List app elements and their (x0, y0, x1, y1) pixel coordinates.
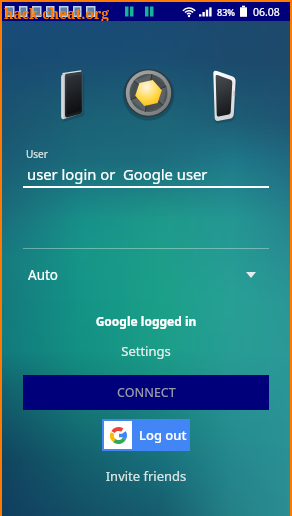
staticText: user login or Google user (27, 164, 208, 184)
button[interactable]: CONNECT (23, 375, 269, 410)
button[interactable]: Log out (102, 419, 190, 451)
button[interactable]: Settings (2, 342, 290, 360)
button[interactable]: Invite friends (2, 467, 290, 485)
staticText: User (26, 147, 48, 161)
staticText: 06.08 (253, 5, 280, 19)
staticText: Auto (28, 266, 59, 284)
staticText: hack-cheat.org (4, 4, 110, 23)
staticText: 83% (217, 6, 235, 18)
staticText: Google logged in (2, 313, 290, 329)
button[interactable]: Auto (2, 262, 290, 288)
staticText: Log out (139, 426, 187, 444)
staticText: CONNECT (117, 384, 176, 401)
